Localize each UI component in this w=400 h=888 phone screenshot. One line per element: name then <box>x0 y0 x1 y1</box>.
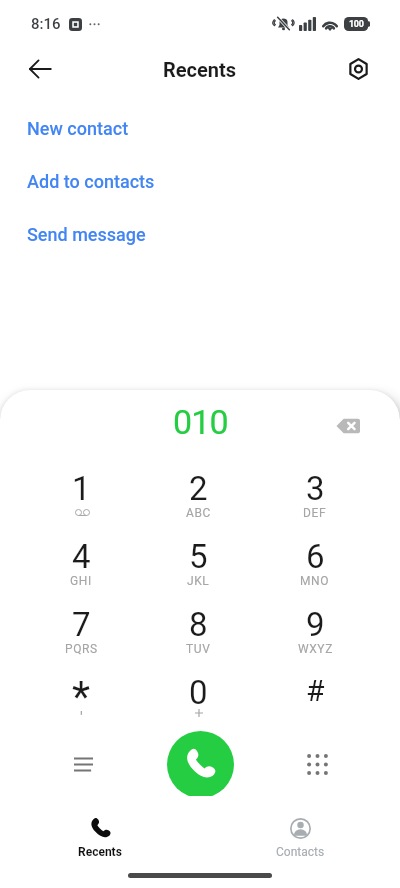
button[interactable]: New contact <box>0 102 400 155</box>
button[interactable]: Backspace <box>328 406 368 446</box>
button[interactable]: 3 <box>257 461 373 529</box>
button[interactable]: 8 <box>140 597 256 665</box>
staticText: 6 <box>306 537 325 576</box>
button[interactable]: # <box>257 665 373 733</box>
button[interactable]: Contacts <box>200 796 400 856</box>
staticText: ABC <box>186 506 211 520</box>
staticText: 1 <box>72 469 91 508</box>
staticText: JKL <box>187 574 210 588</box>
staticText: New contact <box>27 118 129 139</box>
button[interactable]: 7 <box>23 597 139 665</box>
staticText: 8:16 <box>31 15 61 33</box>
staticText: ' <box>80 708 83 727</box>
staticText: 0 <box>189 673 208 712</box>
button[interactable]: Settings <box>338 49 378 89</box>
staticText: # <box>306 673 325 708</box>
staticText: Recents <box>78 845 122 859</box>
staticText: PQRS <box>65 642 98 656</box>
button[interactable]: Add to contacts <box>0 155 400 208</box>
button[interactable]: 6 <box>257 529 373 597</box>
staticText: Send message <box>27 224 146 245</box>
staticText: Recents <box>163 58 237 81</box>
staticText: WXYZ <box>298 642 333 656</box>
staticText: Add to contacts <box>27 171 155 192</box>
button[interactable]: 9 <box>257 597 373 665</box>
button[interactable]: Recents <box>0 796 200 856</box>
button[interactable]: Send message <box>0 208 400 261</box>
staticText: Contacts <box>276 845 325 859</box>
button[interactable]: 2 <box>140 461 256 529</box>
staticText: 8 <box>189 605 208 644</box>
staticText: GHI <box>70 574 92 588</box>
staticText: 5 <box>189 537 208 576</box>
button[interactable]: 4 <box>23 529 139 597</box>
button[interactable]: 1 <box>23 461 139 529</box>
button[interactable]: 5 <box>140 529 256 597</box>
staticText: 7 <box>72 605 91 644</box>
staticText: * <box>72 672 91 721</box>
staticText: 2 <box>189 469 208 508</box>
staticText: 3 <box>306 469 325 508</box>
staticText: MNO <box>300 574 330 588</box>
staticText: TUV <box>186 642 211 656</box>
button[interactable]: Dialpad <box>289 736 345 792</box>
button[interactable]: * <box>23 665 139 733</box>
button[interactable]: Call options <box>55 736 111 792</box>
button[interactable]: Back <box>20 49 60 89</box>
staticText: DEF <box>303 506 327 520</box>
button[interactable]: Call <box>167 731 234 798</box>
staticText: 4 <box>72 537 91 576</box>
staticText: 010 <box>173 402 228 442</box>
button[interactable]: 0 <box>140 665 256 733</box>
staticText: 100 <box>349 19 364 30</box>
staticText: 9 <box>306 605 325 644</box>
